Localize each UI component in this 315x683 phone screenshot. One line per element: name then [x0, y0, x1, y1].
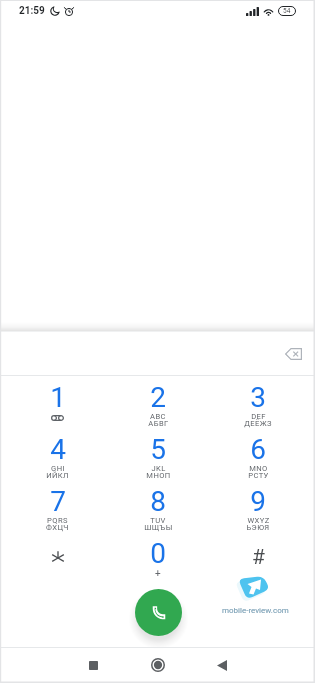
staticText: MNO: [249, 464, 268, 473]
button[interactable]: Call: [135, 589, 182, 636]
staticText: 54: [283, 7, 291, 15]
staticText: ABC: [150, 412, 166, 421]
button[interactable]: Backspace: [275, 336, 311, 372]
staticText: TUV: [150, 516, 166, 525]
staticText: ДЕЁЖЗ: [244, 419, 272, 428]
staticText: ШЩЪЫ: [144, 523, 173, 532]
staticText: GHI: [51, 464, 65, 473]
button[interactable]: 8: [108, 485, 208, 537]
staticText: МНОП: [146, 471, 171, 480]
staticText: 2: [150, 381, 166, 414]
button[interactable]: 3: [208, 381, 308, 433]
button[interactable]: [7, 537, 108, 589]
button[interactable]: 5: [108, 433, 208, 485]
staticText: 8: [150, 485, 166, 518]
staticText: 4: [50, 433, 66, 466]
button[interactable]: 0: [108, 537, 208, 589]
button[interactable]: Home: [136, 647, 180, 683]
button[interactable]: 4: [7, 433, 108, 485]
staticText: 3: [250, 381, 266, 414]
staticText: WXYZ: [247, 516, 270, 525]
button[interactable]: #: [208, 537, 308, 589]
staticText: ЬЭЮЯ: [246, 523, 270, 532]
button[interactable]: 2: [108, 381, 208, 433]
button[interactable]: 9: [208, 485, 308, 537]
button[interactable]: 1: [7, 381, 108, 433]
staticText: +: [155, 568, 161, 580]
staticText: PQRS: [47, 516, 68, 525]
staticText: 0: [150, 537, 166, 570]
staticText: #: [252, 545, 265, 570]
staticText: JKL: [151, 464, 166, 473]
staticText: РСТУ: [248, 471, 269, 480]
staticText: 9: [250, 485, 266, 518]
staticText: АБВГ: [148, 419, 169, 428]
staticText: 1: [50, 381, 66, 414]
button[interactable]: 7: [7, 485, 108, 537]
button[interactable]: 6: [208, 433, 308, 485]
staticText: mobile-review.com: [222, 606, 289, 615]
staticText: ИЙКЛ: [46, 471, 69, 480]
staticText: 7: [50, 485, 66, 518]
staticText: ФХЦЧ: [46, 523, 69, 532]
staticText: 6: [250, 433, 266, 466]
button[interactable]: Recent apps: [71, 647, 115, 683]
staticText: 21:59: [19, 5, 45, 17]
staticText: DEF: [251, 412, 266, 421]
button[interactable]: Back: [200, 647, 244, 683]
staticText: 5: [150, 433, 166, 466]
